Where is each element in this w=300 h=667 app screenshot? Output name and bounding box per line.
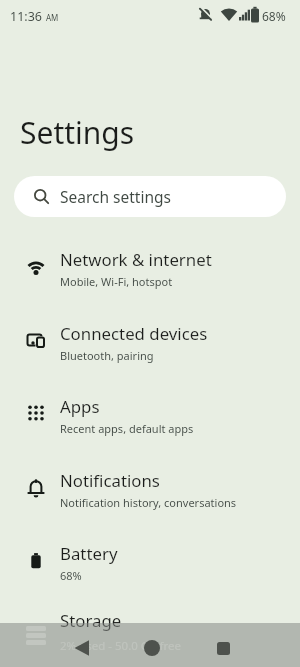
button[interactable]: Battery	[0, 525, 300, 599]
staticText: Apps	[60, 395, 100, 418]
button[interactable]: Search settings	[14, 176, 286, 217]
button[interactable]	[201, 628, 245, 667]
staticText: 68%	[262, 8, 286, 24]
staticText: Battery	[60, 542, 118, 565]
button[interactable]: Network & internet	[0, 231, 300, 305]
staticText: 68%	[60, 568, 82, 583]
button[interactable]	[129, 628, 174, 667]
staticText: 2% used - 50.0 GB free	[60, 638, 182, 654]
staticText: Recent apps, default apps	[60, 421, 194, 436]
button[interactable]	[60, 628, 104, 667]
button[interactable]: Storage	[0, 592, 300, 666]
staticText: 11:36	[10, 8, 42, 25]
button[interactable]: Apps	[0, 378, 300, 452]
staticText: Storage	[60, 609, 122, 632]
staticText: Settings	[20, 112, 135, 153]
staticText: Notification history, conversations	[60, 495, 237, 510]
staticText: Search settings	[60, 186, 171, 207]
staticText: AM	[46, 12, 59, 23]
button[interactable]: Notifications	[0, 452, 300, 526]
button[interactable]: Connected devices	[0, 305, 300, 379]
staticText: Mobile, Wi-Fi, hotspot	[60, 274, 173, 289]
staticText: Connected devices	[60, 322, 208, 345]
staticText: Network & internet	[60, 248, 212, 271]
staticText: Bluetooth, pairing	[60, 348, 154, 363]
staticText: Notifications	[60, 469, 160, 492]
